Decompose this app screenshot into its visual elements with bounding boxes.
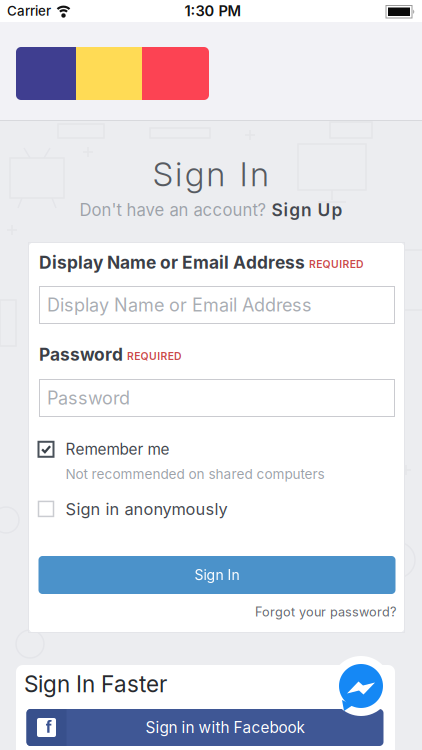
staticText: f [45,717,51,737]
staticText: Carrier [7,3,51,19]
staticText: Display Name or Email Address [47,294,312,316]
button[interactable]: f [26,709,383,746]
staticText: Forgot your password? [255,604,396,620]
staticText: REQUIRED [127,350,182,362]
button[interactable]: Sign Up [272,199,342,220]
button[interactable]: Sign In [38,556,395,594]
staticText: Remember me [65,440,169,459]
button[interactable]: Messenger [331,656,391,716]
staticText: Sign in anonymously [65,499,227,519]
staticText: Password [39,344,123,365]
staticText: Sign In Faster [24,670,167,698]
staticText: Display Name or Email Address [39,252,305,273]
staticText: Sign Up [272,199,342,220]
staticText: Sign in with Facebook [145,718,304,737]
staticText: Not recommended on shared computers [65,466,324,482]
button[interactable]: Forgot your password? [196,604,396,620]
staticText: Sign In [153,154,269,194]
button[interactable]: Sign in anonymously [37,499,227,519]
staticText: Don't have an account? [80,200,267,220]
staticText: Password [47,387,130,409]
staticText: REQUIRED [309,258,364,270]
staticText: Sign In [194,566,239,583]
button[interactable]: Remember me [37,440,169,459]
staticText: 1:30 PM [184,2,241,20]
